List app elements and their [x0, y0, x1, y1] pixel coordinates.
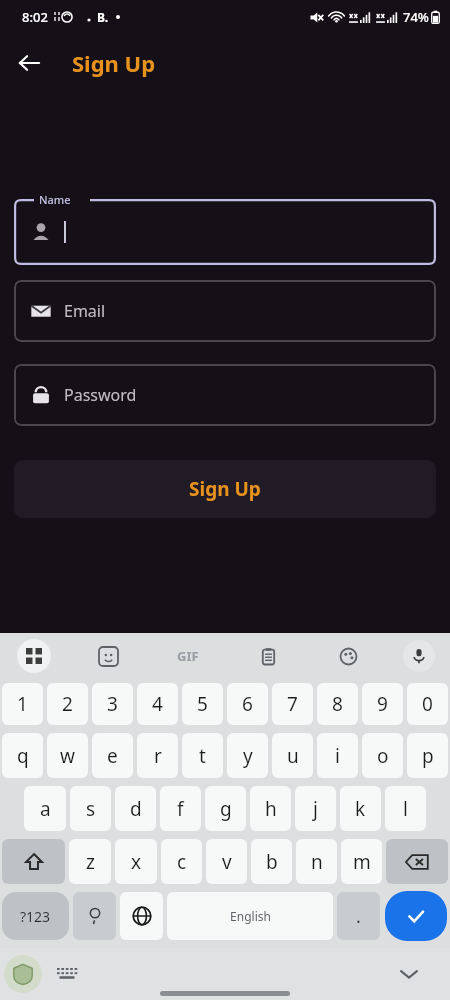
- staticText: u: [287, 743, 299, 769]
- button[interactable]: j: [295, 786, 336, 831]
- staticText: x: [131, 849, 142, 875]
- staticText: n: [311, 849, 323, 875]
- button[interactable]: x: [115, 839, 157, 884]
- button[interactable]: 3: [92, 683, 133, 725]
- staticText: 5: [197, 691, 208, 717]
- staticText: 74%: [403, 8, 429, 26]
- staticText: t: [199, 743, 206, 769]
- staticText: Name: [39, 192, 71, 207]
- staticText: ?123: [20, 907, 51, 926]
- button[interactable]: Change language: [120, 892, 163, 940]
- staticText: 6: [242, 691, 253, 717]
- button[interactable]: 8: [317, 683, 358, 725]
- button[interactable]: r: [137, 733, 178, 778]
- button[interactable]: f: [160, 786, 201, 831]
- button[interactable]: Sign Up: [14, 460, 436, 518]
- button[interactable]: App logo: [4, 955, 42, 993]
- staticText: 1: [17, 691, 28, 717]
- staticText: b: [266, 849, 278, 875]
- button[interactable]: n: [296, 839, 337, 884]
- staticText: c: [177, 849, 187, 875]
- button[interactable]: Voice input: [388, 633, 450, 679]
- button[interactable]: 9: [362, 683, 403, 725]
- button[interactable]: c: [161, 839, 202, 884]
- staticText: 8:02: [22, 8, 48, 26]
- button[interactable]: 1: [2, 683, 43, 725]
- button[interactable]: Backspace: [386, 839, 448, 884]
- button[interactable]: English: [167, 892, 333, 940]
- button[interactable]: e: [92, 733, 133, 778]
- staticText: s: [86, 796, 96, 822]
- button[interactable]: w: [47, 733, 88, 778]
- button[interactable]: 4: [137, 683, 178, 725]
- button[interactable]: Back: [8, 42, 50, 84]
- button[interactable]: s: [70, 786, 111, 831]
- button[interactable]: p: [407, 733, 448, 778]
- button[interactable]: u: [272, 733, 313, 778]
- button[interactable]: Toolbar menu: [0, 633, 68, 679]
- button[interactable]: y: [227, 733, 268, 778]
- staticText: h: [265, 796, 277, 822]
- staticText: GIF: [177, 647, 199, 665]
- staticText: r: [154, 743, 162, 769]
- staticText: 7: [287, 691, 298, 717]
- button[interactable]: Enter: [385, 891, 447, 941]
- button[interactable]: 2: [47, 683, 88, 725]
- staticText: e: [107, 743, 118, 769]
- button[interactable]: a: [24, 786, 66, 831]
- button[interactable]: z: [69, 839, 111, 884]
- button[interactable]: .: [337, 892, 380, 940]
- button[interactable]: 5: [182, 683, 223, 725]
- staticText: English: [230, 908, 271, 924]
- staticText: m: [353, 849, 371, 875]
- staticText: Password: [64, 384, 137, 406]
- button[interactable]: Hide keyboard: [392, 957, 426, 991]
- button[interactable]: 7: [272, 683, 313, 725]
- button[interactable]: 0: [407, 683, 448, 725]
- button[interactable]: Keyboard switcher: [52, 959, 82, 989]
- staticText: 3: [107, 691, 118, 717]
- button[interactable]: q: [2, 733, 43, 778]
- button[interactable]: h: [250, 786, 291, 831]
- button[interactable]: 6: [227, 683, 268, 725]
- staticText: v: [222, 849, 232, 875]
- staticText: Email: [64, 300, 106, 322]
- staticText: l: [403, 796, 408, 822]
- staticText: i: [335, 743, 340, 769]
- staticText: 9: [377, 691, 388, 717]
- staticText: z: [86, 849, 95, 875]
- button[interactable]: t: [182, 733, 223, 778]
- staticText: d: [130, 796, 142, 822]
- button[interactable]: m: [341, 839, 382, 884]
- button[interactable]: o: [362, 733, 403, 778]
- button[interactable]: ?123: [2, 892, 69, 940]
- button[interactable]: k: [340, 786, 381, 831]
- button[interactable]: d: [115, 786, 156, 831]
- button[interactable]: Email: [14, 280, 436, 342]
- button[interactable]: b: [251, 839, 292, 884]
- button[interactable]: Emoji and comma: [73, 892, 116, 940]
- staticText: B.: [97, 9, 109, 25]
- button[interactable]: g: [205, 786, 246, 831]
- button[interactable]: l: [385, 786, 426, 831]
- button[interactable]: Theme: [308, 633, 388, 679]
- staticText: a: [40, 796, 51, 822]
- staticText: Sign Up: [72, 48, 156, 78]
- button[interactable]: v: [206, 839, 247, 884]
- button[interactable]: i: [317, 733, 358, 778]
- button[interactable]: Shift: [2, 839, 65, 884]
- staticText: o: [377, 743, 389, 769]
- staticText: .: [356, 904, 361, 929]
- button[interactable]: Password: [14, 364, 436, 426]
- staticText: 0: [422, 691, 433, 717]
- staticText: 8: [332, 691, 343, 717]
- staticText: g: [220, 796, 232, 822]
- staticText: j: [313, 796, 318, 822]
- staticText: w: [60, 743, 75, 769]
- staticText: k: [355, 796, 366, 822]
- staticText: p: [422, 743, 434, 769]
- staticText: q: [17, 743, 29, 769]
- staticText: Sign Up: [189, 476, 261, 502]
- button[interactable]: Stickers: [68, 633, 148, 679]
- button[interactable]: Clipboard: [228, 633, 308, 679]
